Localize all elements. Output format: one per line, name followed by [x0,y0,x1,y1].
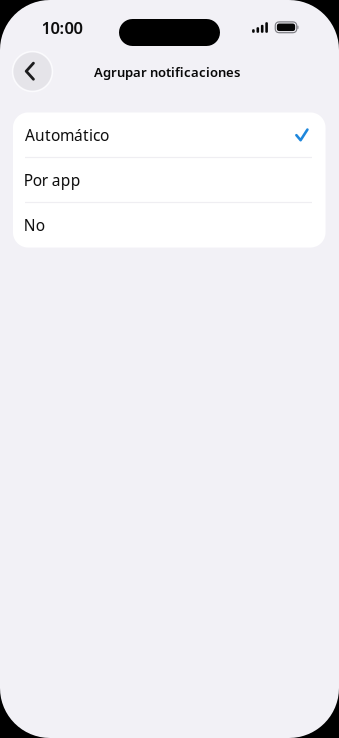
button[interactable]: No [13,202,325,247]
button[interactable]: Automático [13,112,325,157]
staticText: 10:00 [41,16,82,38]
staticText: No [24,215,45,235]
staticText: Agrupar notificaciones [94,63,240,81]
staticText: Automático [25,125,109,145]
button[interactable]: Back [13,52,51,90]
button[interactable]: Por app [13,157,325,202]
staticText: Por app [24,170,81,190]
